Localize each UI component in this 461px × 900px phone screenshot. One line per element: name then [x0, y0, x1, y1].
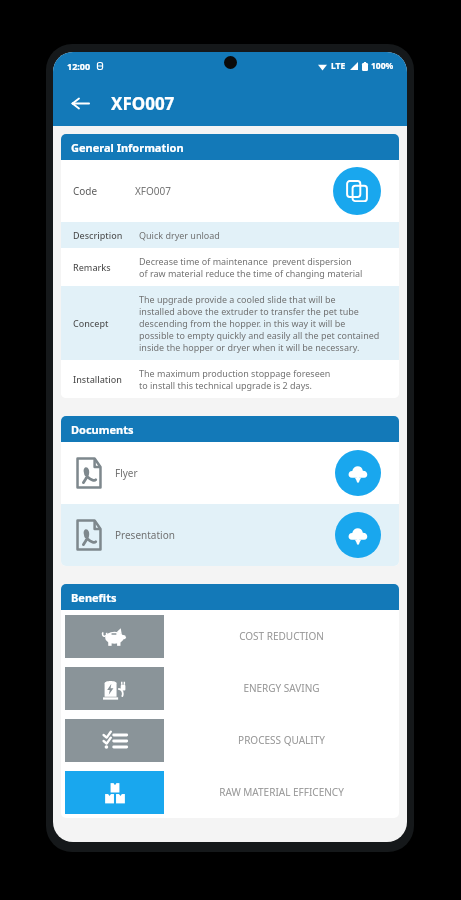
- button[interactable]: COST REDUCTION: [61, 610, 399, 662]
- staticText: Remarks: [73, 261, 139, 273]
- staticText: XFO007: [135, 184, 172, 198]
- button[interactable]: Download Presentation: [335, 512, 381, 558]
- staticText: possible to empty quickly and easily all…: [139, 329, 380, 341]
- staticText: General Information: [71, 140, 184, 155]
- staticText: Installation: [73, 373, 139, 385]
- staticText: COST REDUCTION: [239, 629, 324, 643]
- button[interactable]: Flyer: [61, 442, 399, 504]
- staticText: Presentation: [115, 528, 175, 542]
- button[interactable]: Copy code: [333, 167, 381, 215]
- staticText: The upgrade provide a cooled slide that …: [139, 293, 336, 305]
- staticText: Decrease time of maintenance prevent dis…: [139, 255, 352, 267]
- staticText: Code: [73, 184, 135, 198]
- button[interactable]: Download Flyer: [335, 450, 381, 496]
- staticText: 100%: [371, 60, 394, 72]
- staticText: of raw material reduce the time of chang…: [139, 267, 363, 279]
- staticText: RAW MATERIAL EFFICENCY: [219, 785, 344, 799]
- staticText: Documents: [71, 422, 134, 437]
- staticText: Concept: [73, 317, 139, 329]
- staticText: Flyer: [115, 466, 138, 480]
- button[interactable]: PROCESS QUALITY: [61, 714, 399, 766]
- button[interactable]: Back: [61, 84, 99, 122]
- staticText: ENERGY SAVING: [243, 681, 320, 695]
- staticText: XFO007: [111, 92, 175, 115]
- staticText: The maximum production stoppage foreseen: [139, 367, 331, 379]
- staticText: 12:00: [67, 60, 91, 72]
- staticText: installed above the extruder to transfer…: [139, 305, 359, 317]
- staticText: Quick dryer unload: [139, 229, 220, 241]
- button[interactable]: ENERGY SAVING: [61, 662, 399, 714]
- staticText: PROCESS QUALITY: [238, 733, 325, 747]
- staticText: to install this technical upgrade is 2 d…: [139, 379, 312, 391]
- staticText: LTE: [331, 60, 346, 72]
- button[interactable]: Presentation: [61, 504, 399, 566]
- button[interactable]: RAW MATERIAL EFFICENCY: [61, 766, 399, 818]
- staticText: descending from the hopper. in this way …: [139, 317, 346, 329]
- staticText: Benefits: [71, 590, 117, 605]
- staticText: Description: [73, 229, 139, 241]
- staticText: inside the hopper or dryer when it will …: [139, 341, 360, 353]
